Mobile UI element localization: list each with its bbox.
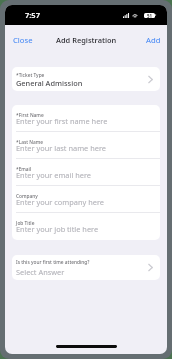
staticText: *Ticket Type bbox=[16, 72, 45, 79]
button[interactable]: *Email bbox=[12, 159, 160, 186]
staticText: Enter your company here bbox=[16, 197, 104, 207]
staticText: Enter your job title here bbox=[16, 224, 99, 234]
button[interactable]: Job Title bbox=[12, 213, 160, 240]
button[interactable]: Add bbox=[140, 31, 167, 49]
staticText: General Admission bbox=[16, 78, 83, 88]
staticText: Job Title bbox=[16, 220, 35, 227]
staticText: *Last Name bbox=[16, 139, 44, 146]
button[interactable]: Close bbox=[5, 31, 41, 49]
staticText: Select Answer bbox=[16, 267, 65, 277]
button[interactable]: Company bbox=[12, 186, 160, 213]
button[interactable]: *First Name bbox=[12, 105, 160, 132]
staticText: Add Registration bbox=[56, 35, 117, 45]
button[interactable]: *Last Name bbox=[12, 132, 160, 159]
staticText: 7:57 bbox=[25, 10, 40, 20]
staticText: Company bbox=[16, 193, 38, 200]
staticText: *First Name bbox=[16, 112, 44, 119]
button[interactable]: Is this your first time attending? bbox=[12, 255, 160, 280]
staticText: Enter your last name here bbox=[16, 143, 106, 153]
staticText: Close bbox=[13, 35, 33, 45]
staticText: Is this your first time attending? bbox=[16, 259, 90, 266]
staticText: Enter your email here bbox=[16, 170, 92, 180]
staticText: 51 bbox=[147, 13, 153, 18]
staticText: *Email bbox=[16, 166, 32, 173]
button[interactable]: *Ticket Type bbox=[12, 67, 160, 91]
staticText: Add bbox=[146, 35, 161, 45]
staticText: Enter your first name here bbox=[16, 116, 108, 126]
